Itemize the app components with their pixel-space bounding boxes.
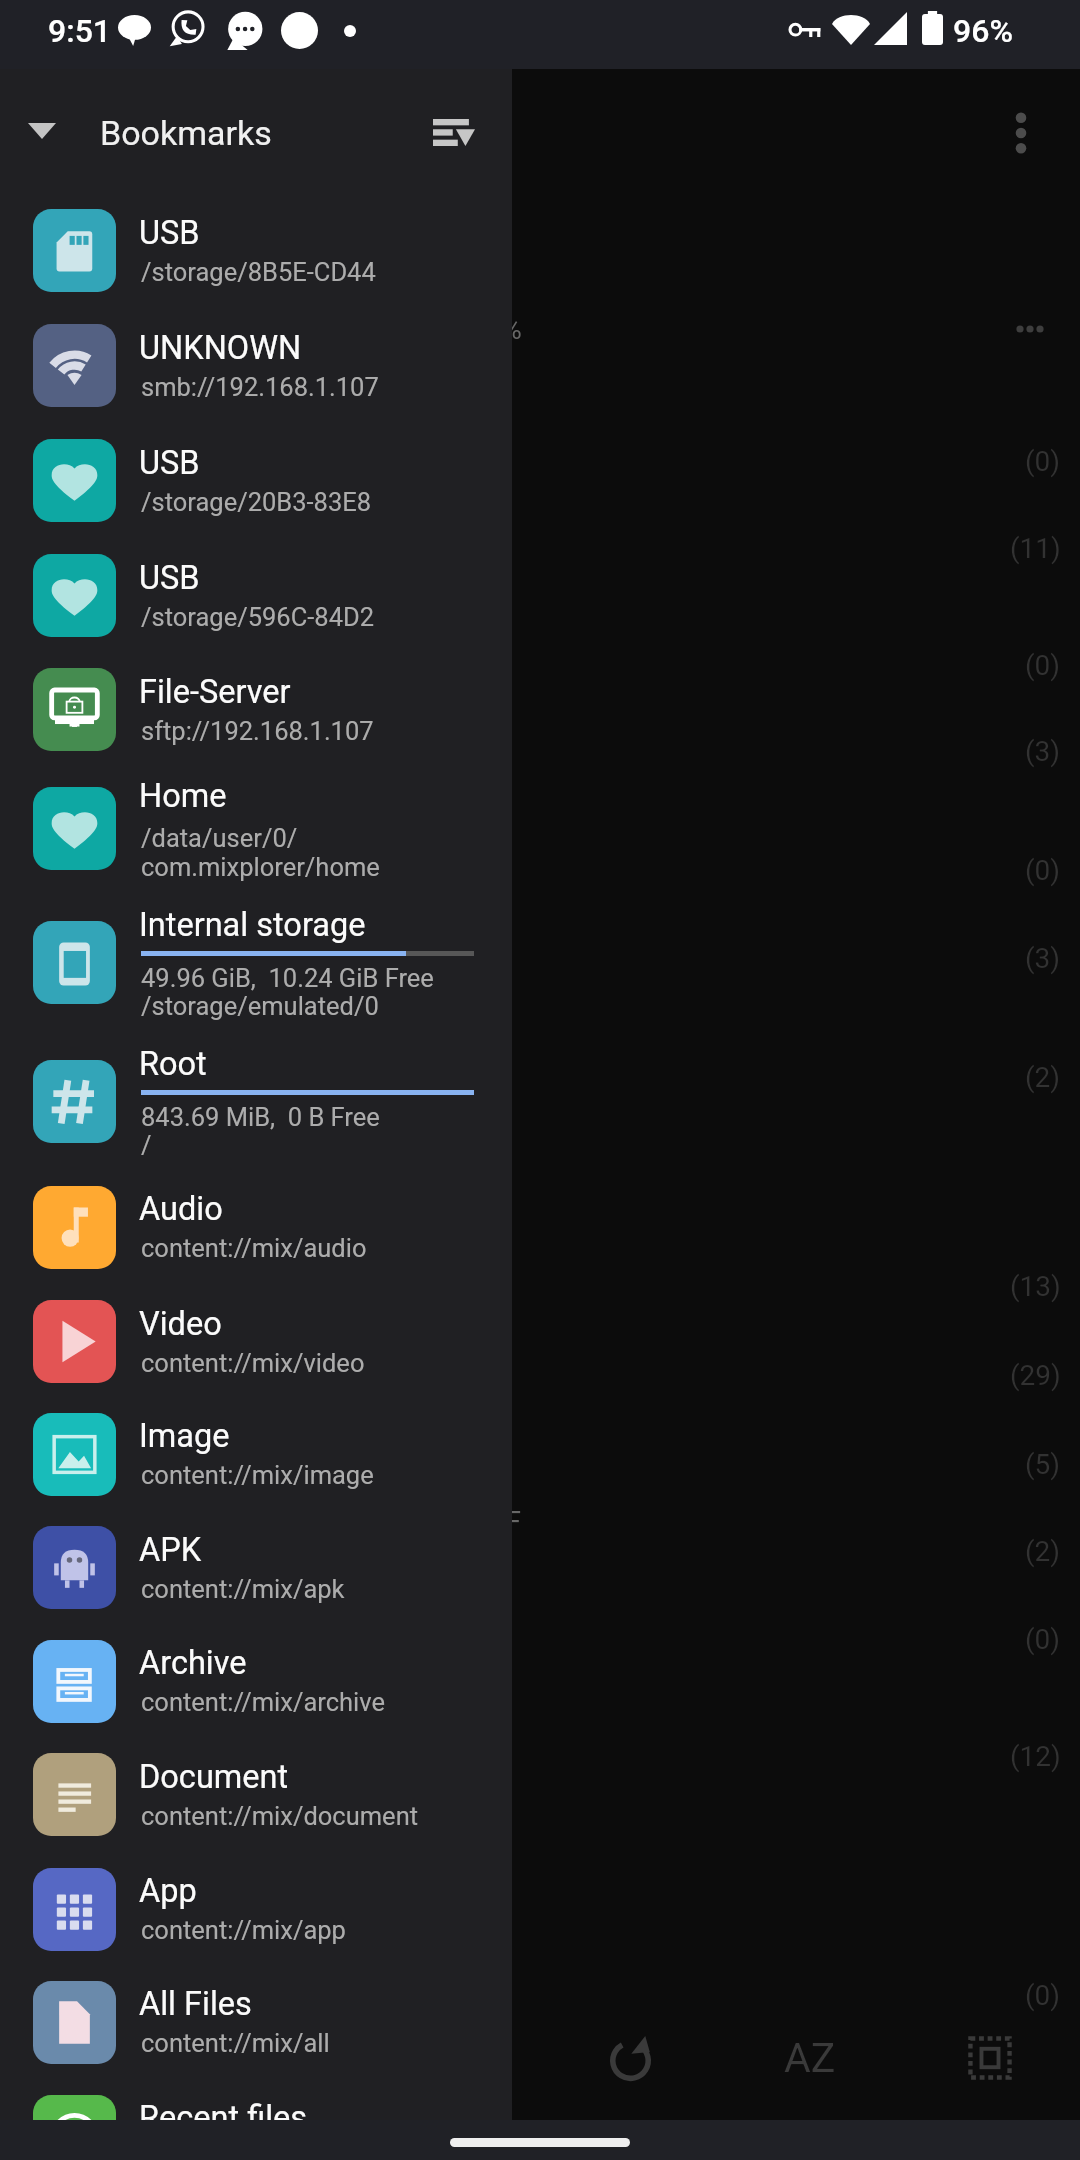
staticText: USB bbox=[139, 559, 200, 597]
button[interactable] bbox=[0, 1284, 512, 1398]
staticText: F bbox=[512, 1506, 521, 1538]
staticText: (11) bbox=[1010, 532, 1061, 565]
staticText: Audio bbox=[139, 1190, 223, 1228]
staticText: smb://192.168.1.107 bbox=[141, 372, 379, 402]
button[interactable] bbox=[0, 538, 512, 653]
staticText: (12) bbox=[1010, 1740, 1061, 1773]
staticText: (13) bbox=[1010, 1270, 1061, 1303]
staticText: File-Server bbox=[139, 673, 291, 711]
staticText: content://mix/video bbox=[141, 1348, 365, 1378]
staticText: (0) bbox=[1025, 649, 1061, 682]
button[interactable] bbox=[0, 1738, 512, 1852]
staticText: AZ bbox=[784, 2034, 836, 2082]
staticText: (2) bbox=[1025, 1061, 1061, 1094]
staticText: / bbox=[141, 1130, 152, 1160]
staticText: USB bbox=[139, 214, 200, 252]
staticText: content://mix/audio bbox=[141, 1233, 367, 1263]
staticText: content://mix/app bbox=[141, 1915, 346, 1945]
staticText: 843.69 MiB, 0 B Free bbox=[141, 1102, 380, 1132]
staticText: (29) bbox=[1010, 1359, 1061, 1392]
button[interactable]: More options bbox=[979, 91, 1063, 175]
staticText: sftp://192.168.1.107 bbox=[141, 716, 374, 746]
staticText: App bbox=[139, 1872, 197, 1910]
button[interactable] bbox=[0, 308, 512, 423]
staticText: (0) bbox=[1025, 1623, 1061, 1656]
staticText: Video bbox=[139, 1305, 222, 1343]
staticText: content://mix/document bbox=[141, 1801, 419, 1831]
button[interactable] bbox=[0, 1032, 512, 1164]
staticText: content://mix/archive bbox=[141, 1687, 386, 1717]
button[interactable]: Select all bbox=[945, 2013, 1035, 2103]
staticText: Root bbox=[139, 1045, 207, 1083]
staticText: content://mix/image bbox=[141, 1460, 374, 1490]
button[interactable] bbox=[0, 896, 512, 1033]
button[interactable] bbox=[0, 2079, 512, 2120]
staticText: APK bbox=[139, 1531, 202, 1569]
staticText: (0) bbox=[1025, 1979, 1061, 2012]
staticText: Recent files bbox=[139, 2099, 308, 2120]
staticText: content://mix/all bbox=[141, 2028, 330, 2058]
button[interactable] bbox=[0, 1511, 512, 1625]
staticText: com.mixplorer/home bbox=[141, 852, 380, 882]
staticText: /storage/20B3-83E8 bbox=[141, 487, 372, 517]
button[interactable] bbox=[0, 1624, 512, 1738]
staticText: Document bbox=[139, 1758, 289, 1796]
button[interactable]: Sort bbox=[412, 97, 496, 167]
button[interactable] bbox=[0, 1164, 512, 1284]
staticText: 49.96 GiB, 10.24 GiB Free bbox=[141, 963, 434, 993]
staticText: Image bbox=[139, 1417, 230, 1455]
button[interactable] bbox=[0, 193, 512, 308]
staticText: Home bbox=[139, 777, 227, 815]
button[interactable] bbox=[0, 1852, 512, 1966]
staticText: (2) bbox=[1025, 1535, 1061, 1568]
staticText: UNKNOWN bbox=[139, 329, 302, 367]
staticText: /data/user/0/ bbox=[141, 823, 298, 853]
button[interactable]: Refresh bbox=[585, 2013, 675, 2103]
staticText: /storage/emulated/0 bbox=[141, 991, 379, 1021]
staticText: Archive bbox=[139, 1644, 247, 1682]
staticText: (3) bbox=[1025, 942, 1061, 975]
staticText: Bookmarks bbox=[100, 113, 272, 153]
staticText: Internal storage bbox=[139, 906, 366, 944]
staticText: /storage/596C-84D2 bbox=[141, 602, 375, 632]
button[interactable]: AZ bbox=[755, 2013, 865, 2103]
staticText: (0) bbox=[1025, 445, 1061, 478]
staticText: % bbox=[512, 314, 522, 346]
staticText: (5) bbox=[1025, 1448, 1061, 1481]
button[interactable] bbox=[0, 423, 512, 538]
staticText: (3) bbox=[1025, 735, 1061, 768]
staticText: USB bbox=[139, 444, 200, 482]
button[interactable] bbox=[0, 1966, 512, 2080]
button[interactable] bbox=[0, 1398, 512, 1511]
staticText: 9:51 bbox=[48, 12, 111, 50]
staticText: /storage/8B5E-CD44 bbox=[141, 257, 376, 287]
button[interactable]: Collapse bbox=[12, 101, 72, 161]
staticText: All Files bbox=[139, 1985, 252, 2023]
staticText: 96% bbox=[953, 12, 1013, 50]
button[interactable] bbox=[0, 653, 512, 770]
button[interactable] bbox=[0, 769, 512, 896]
staticText: content://mix/apk bbox=[141, 1574, 345, 1604]
staticText: (0) bbox=[1025, 854, 1061, 887]
